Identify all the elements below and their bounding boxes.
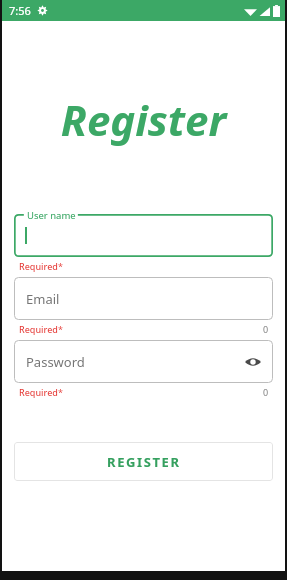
staticText: Required	[19, 323, 58, 335]
button[interactable]: Show password	[242, 351, 264, 373]
staticText: Email	[26, 290, 60, 308]
staticText: Required	[19, 386, 58, 398]
staticText: Password	[26, 353, 85, 371]
staticText: User name	[27, 209, 76, 222]
staticText: 7:56	[9, 3, 31, 18]
button[interactable]: Password	[14, 340, 273, 383]
staticText: *	[58, 386, 63, 398]
staticText: Register	[2, 91, 285, 148]
button[interactable]: Email	[14, 277, 273, 320]
button[interactable]: REGISTER	[14, 442, 273, 481]
button[interactable]: User name	[14, 214, 273, 257]
staticText: 0	[263, 386, 269, 398]
staticText: *	[58, 260, 63, 272]
staticText: *	[58, 323, 63, 335]
staticText: 0	[263, 323, 269, 335]
staticText: Required	[19, 260, 58, 272]
staticText: REGISTER	[107, 453, 181, 471]
